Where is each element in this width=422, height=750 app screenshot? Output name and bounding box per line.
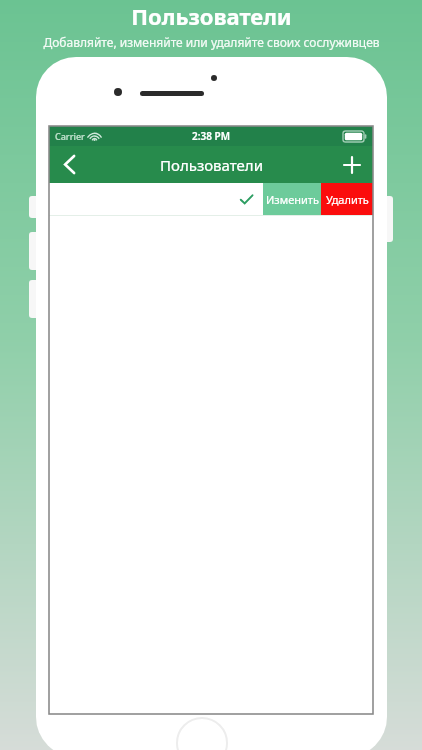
staticText: Изменить [266, 192, 319, 207]
staticText: Carrier [55, 130, 85, 142]
button[interactable]: Add user [331, 146, 373, 183]
staticText: Удалить [326, 192, 369, 207]
staticText: Пользователи [160, 155, 263, 175]
staticText: 2:38 PM [192, 129, 230, 143]
button[interactable]: Удалить [321, 183, 373, 215]
staticText: Пользователи [131, 1, 292, 31]
button[interactable]: Back [49, 146, 89, 183]
staticText: Добавляйте, изменяйте или удаляйте своих… [43, 34, 380, 50]
button[interactable]: Изменить [263, 183, 321, 215]
button[interactable] [49, 183, 263, 215]
